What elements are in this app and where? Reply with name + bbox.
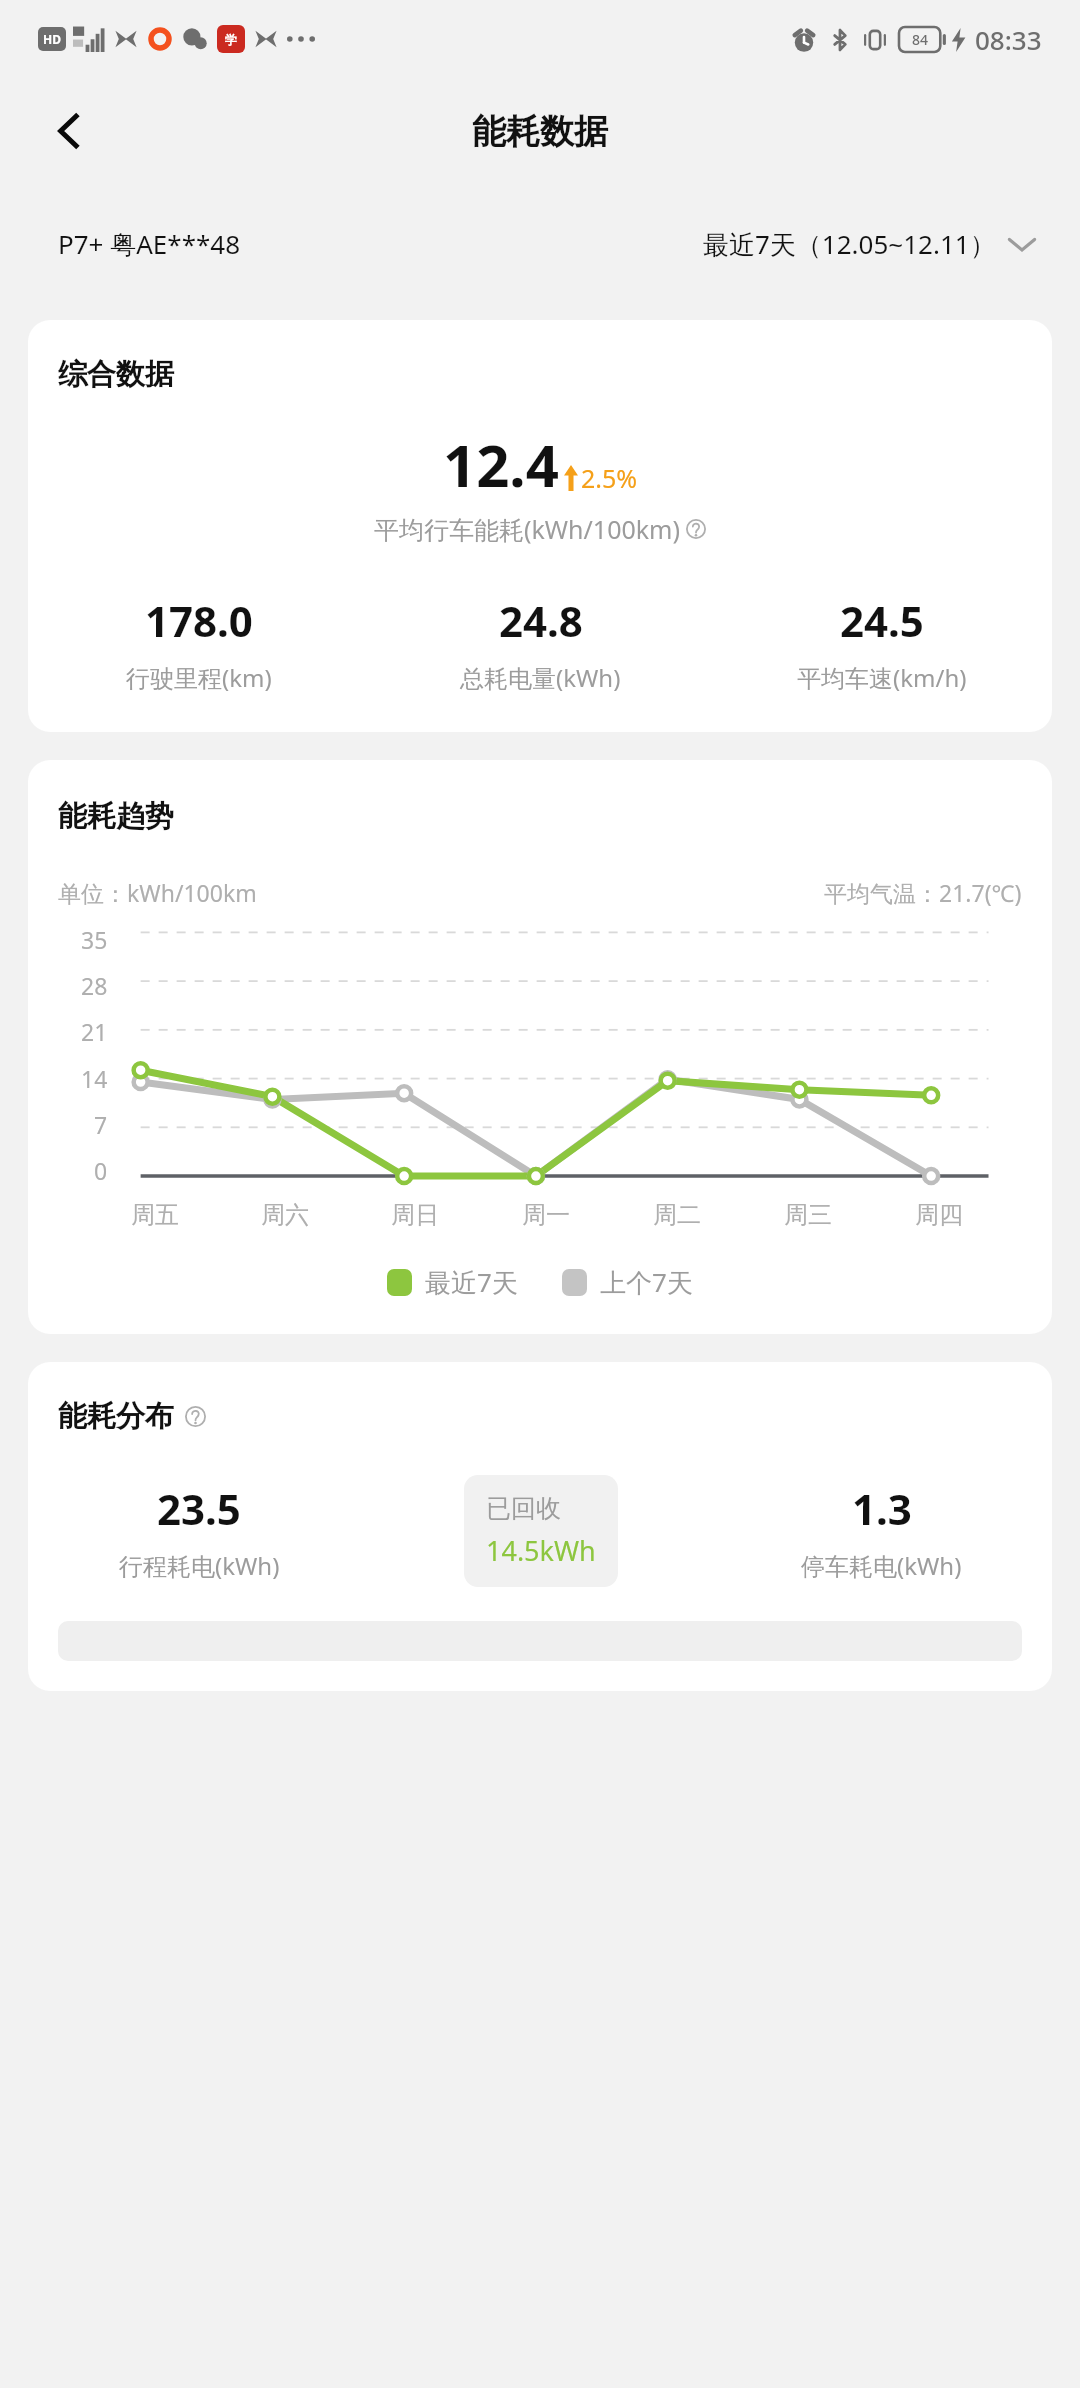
staticText: 总耗电量(kWh) — [460, 661, 621, 694]
staticText: 能耗数据 — [472, 110, 608, 153]
staticText: 停车耗电(kWh) — [801, 1549, 962, 1582]
staticText: 周二 — [653, 1200, 701, 1230]
button[interactable]: 最近7天（12.05~12.11） — [703, 226, 1036, 262]
staticText: 周日 — [391, 1200, 439, 1230]
staticText: P7+ 粤AE***48 — [58, 226, 241, 262]
staticText: 1.3 — [852, 1480, 912, 1537]
staticText: 178.0 — [145, 592, 253, 649]
staticText: 能耗分布 — [58, 1398, 174, 1435]
staticText: 12.4 — [443, 425, 559, 504]
staticText: 行驶里程(km) — [126, 661, 272, 694]
staticText: HD — [43, 31, 61, 47]
staticText: 周三 — [784, 1200, 832, 1230]
staticText: 24.5 — [840, 592, 924, 649]
button[interactable]: 上个7天 — [562, 1264, 693, 1300]
staticText: 0 — [94, 1155, 108, 1186]
staticText: 24.8 — [499, 592, 583, 649]
staticText: 已回收 — [486, 1493, 561, 1524]
staticText: 28 — [81, 970, 108, 1001]
staticText: 能耗趋势 — [58, 798, 174, 835]
staticText: 平均气温：21.7(℃) — [824, 877, 1022, 908]
staticText: 学 — [225, 32, 237, 47]
staticText: 周一 — [522, 1200, 570, 1230]
staticText: 08:33 — [975, 22, 1042, 57]
staticText: 行程耗电(kWh) — [119, 1549, 280, 1582]
staticText: 14 — [81, 1063, 108, 1094]
staticText: 7 — [94, 1109, 108, 1140]
staticText: 2.5% — [581, 461, 638, 495]
staticText: 84 — [912, 30, 929, 49]
staticText: 35 — [81, 924, 108, 955]
staticText: 周五 — [131, 1200, 179, 1230]
staticText: 周六 — [261, 1200, 309, 1230]
staticText: 最近7天 — [425, 1264, 518, 1300]
button[interactable]: 综合数据 — [28, 320, 1052, 732]
staticText: 平均行车能耗(kWh/100km) — [374, 512, 680, 546]
button[interactable]: 最近7天 — [387, 1264, 518, 1300]
staticText: 周四 — [915, 1200, 963, 1230]
staticText: 14.5kWh — [486, 1532, 596, 1569]
button[interactable]: 能耗趋势 — [28, 760, 1052, 1334]
staticText: 21 — [81, 1016, 108, 1047]
staticText: 平均车速(km/h) — [797, 661, 967, 694]
staticText: 23.5 — [157, 1480, 241, 1537]
staticText: 综合数据 — [58, 356, 174, 393]
staticText: 单位：kWh/100km — [58, 877, 257, 908]
button[interactable]: Back — [40, 101, 100, 161]
staticText: 上个7天 — [600, 1264, 693, 1300]
staticText: 最近7天（12.05~12.11） — [703, 226, 996, 262]
button[interactable]: 能耗分布 — [28, 1362, 1052, 1691]
